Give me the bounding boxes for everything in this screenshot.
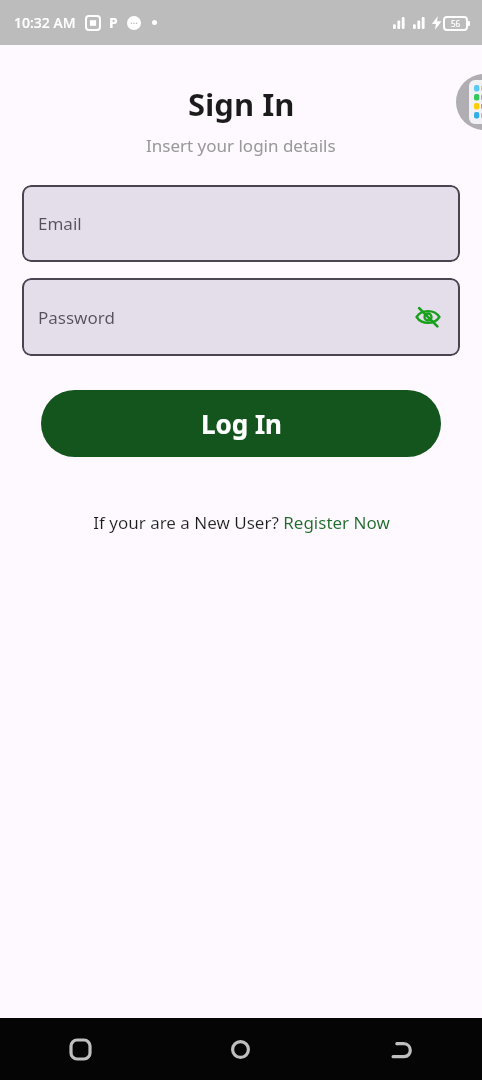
staticText: Insert your login details [146,134,336,157]
button[interactable]: If your are a New User? Register Now [89,507,394,538]
staticText: If your are a New User? Register Now [93,511,390,534]
staticText: Log In [201,406,282,441]
staticText: 10:32 AM [14,13,76,32]
staticText: Sign In [188,83,295,125]
button[interactable]: Password [22,278,460,356]
staticText: Email [38,212,82,235]
button[interactable]: Recent apps [0,1040,160,1059]
staticText: P [109,13,118,32]
staticText: 56 [451,18,461,29]
button[interactable]: Log In [41,390,441,457]
staticText: Password [38,306,115,329]
button[interactable]: Home [160,1040,321,1059]
button[interactable]: Back [321,1041,482,1058]
button[interactable]: Email [22,185,460,262]
button[interactable]: Floating app bubble [456,74,482,130]
button[interactable]: Show password [412,301,444,333]
